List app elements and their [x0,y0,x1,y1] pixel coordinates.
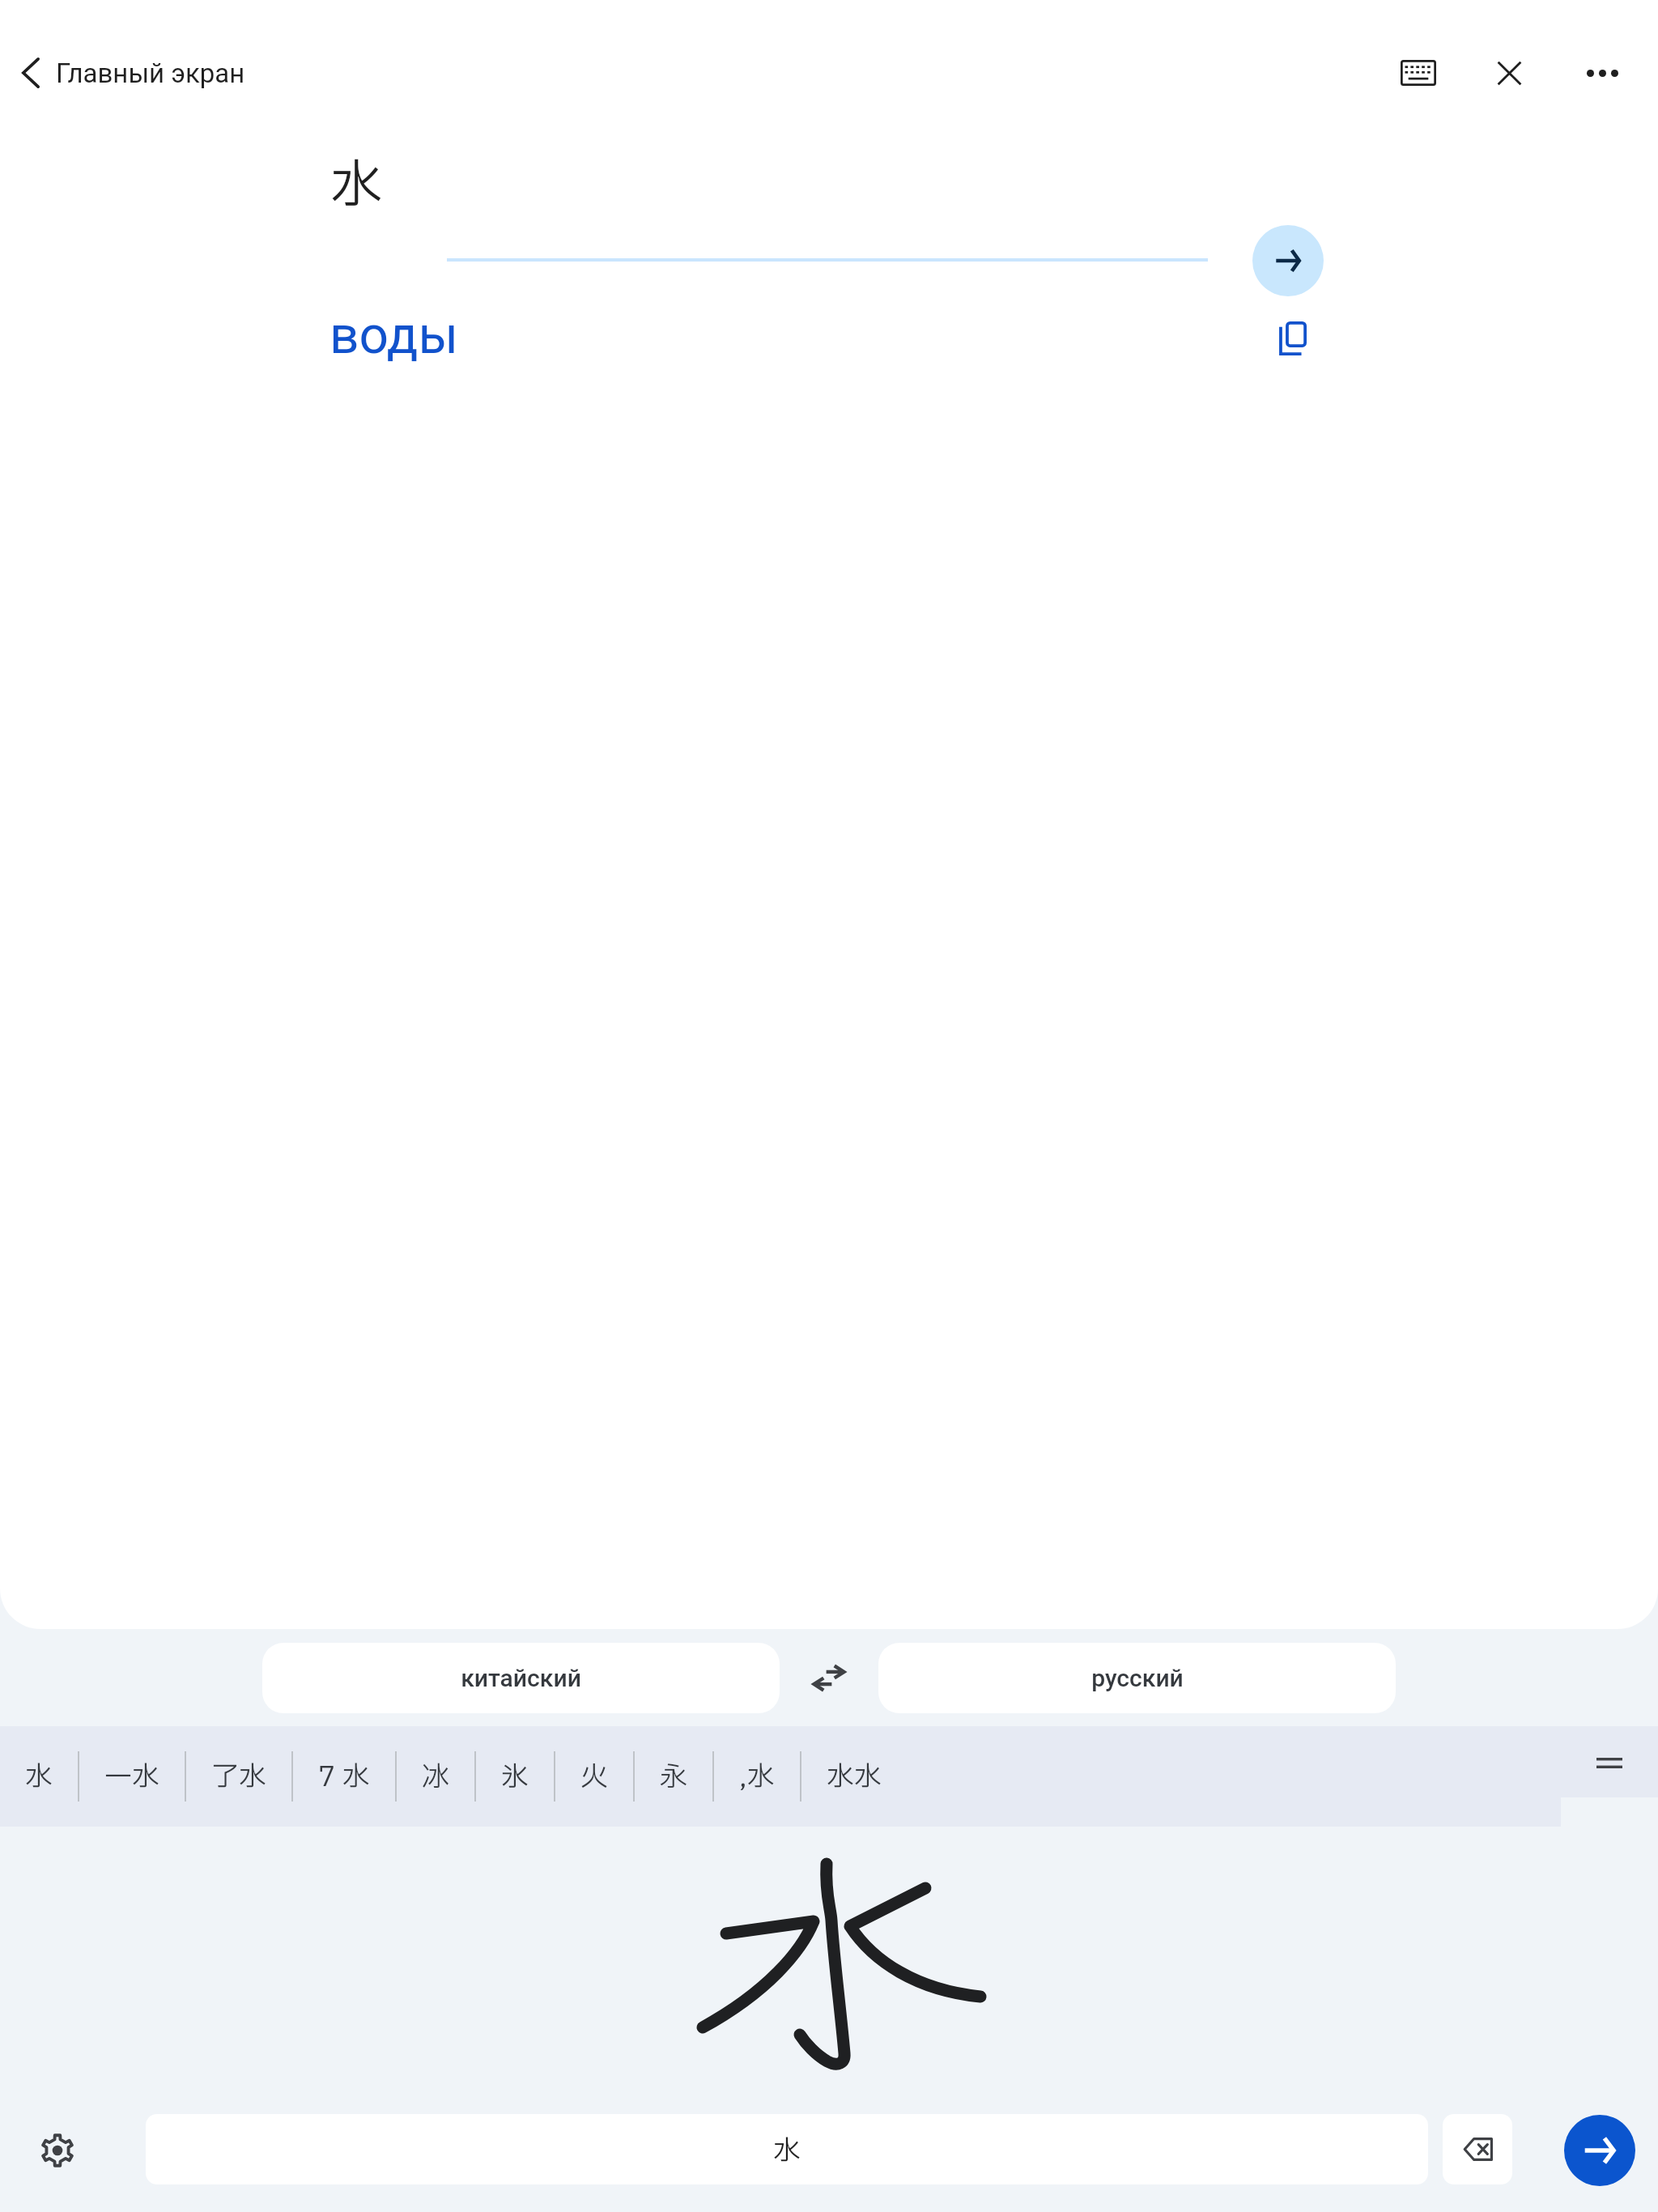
button[interactable]: русский [878,1643,1396,1713]
button[interactable]: китайский [262,1643,780,1713]
button[interactable]: 7 水 [293,1726,395,1827]
button[interactable]: Settings [22,2115,93,2186]
button[interactable]: Close [1473,37,1545,108]
button[interactable]: Backspace [1443,2114,1512,2184]
button[interactable]: Swap languages [780,1629,878,1726]
staticText: 火 [580,1757,608,1798]
button[interactable]: Главный экран [6,45,258,100]
button[interactable]: воды [318,300,470,371]
button[interactable]: Enter [1564,2115,1635,2186]
staticText: 水 [330,147,384,226]
staticText: Главный экран [56,57,245,89]
staticText: русский [1091,1664,1184,1692]
staticText: воды [329,305,459,366]
staticText: 冰 [422,1757,449,1798]
button[interactable]: 冰 [397,1726,474,1827]
staticText: 7 水 [318,1757,370,1798]
staticText: 一水 [104,1757,159,1798]
staticText: 氷 [501,1757,529,1798]
button[interactable]: 水 [0,1726,78,1827]
staticText: 水水 [827,1757,882,1798]
button[interactable]: 水水 [801,1726,907,1827]
staticText: 水 [773,2131,801,2172]
staticText: 了水 [211,1757,266,1798]
staticText: 永 [660,1757,687,1798]
button[interactable]: Expand suggestions [1566,1727,1653,1798]
button[interactable]: 火 [555,1726,633,1827]
button[interactable]: 水 [146,2114,1428,2184]
button[interactable]: ,水 [714,1726,800,1827]
button[interactable]: 了水 [186,1726,291,1827]
button[interactable]: Keyboard [1383,37,1454,108]
staticText: 水 [25,1757,53,1798]
button[interactable]: Translate [1252,225,1324,296]
button[interactable]: 一水 [79,1726,185,1827]
button[interactable]: Copy [1256,303,1328,374]
button[interactable]: 氷 [476,1726,554,1827]
button[interactable]: 永 [635,1726,712,1827]
staticText: китайский [461,1664,581,1692]
button[interactable]: More options [1567,37,1638,108]
staticText: ,水 [739,1757,775,1798]
